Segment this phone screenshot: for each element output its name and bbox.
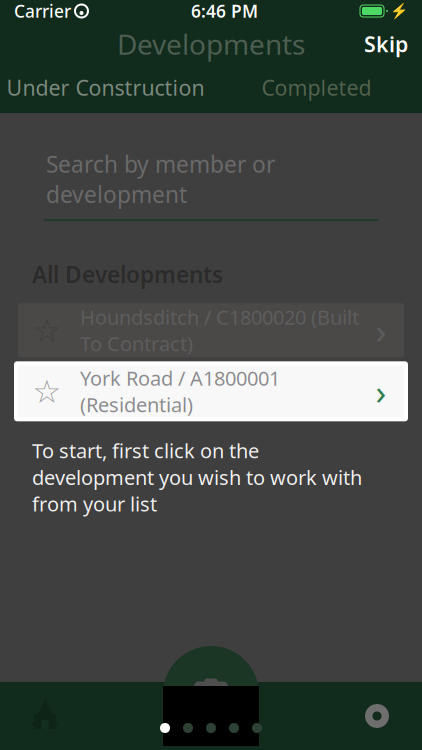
staticText: Developments — [117, 25, 305, 63]
staticText: All Developments — [32, 259, 223, 289]
staticText: Search by member or development — [46, 149, 275, 209]
button[interactable]: ☆ — [18, 303, 404, 357]
staticText: Houndsditch / C1800020 (Built To Contrac… — [80, 304, 359, 357]
staticText: ☆ — [32, 373, 61, 409]
staticText — [69, 0, 75, 26]
button[interactable]: Completed — [211, 67, 422, 108]
staticText: Under Construction — [6, 73, 204, 102]
staticText: › — [375, 307, 386, 353]
staticText: Skip — [364, 30, 408, 58]
staticText: ▲ — [31, 690, 58, 730]
staticText: › — [375, 368, 386, 414]
staticText: 6:46 PM — [191, 0, 258, 22]
button[interactable]: ☆ — [14, 361, 408, 421]
staticText: Completed — [261, 73, 371, 102]
button[interactable]: Camera — [163, 686, 259, 746]
staticText: Carrier — [14, 0, 71, 22]
button[interactable]: Settings — [332, 686, 422, 746]
staticText: York Road / A1800001 (Residential) — [80, 365, 280, 418]
button[interactable]: Skip — [350, 22, 422, 66]
staticText: ⚡ — [390, 3, 408, 19]
staticText: To start, first click on the development… — [32, 437, 362, 517]
button[interactable]: Under Construction — [0, 67, 211, 108]
